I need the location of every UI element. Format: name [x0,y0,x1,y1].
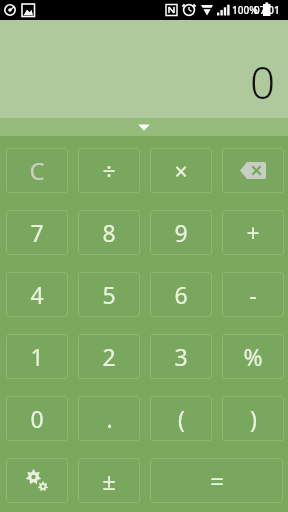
staticText: ( [178,403,185,434]
button[interactable]: ÷ [78,148,140,193]
staticText: 6 [174,279,188,310]
button[interactable]: × [150,148,212,193]
staticText: . [106,403,113,434]
staticText: % [243,341,263,372]
button[interactable]: - [222,272,284,317]
button[interactable]: 6 [150,272,212,317]
staticText: 3 [174,341,188,372]
staticText: 2 [102,341,116,372]
staticText: ) [250,403,257,434]
button[interactable]: ) [222,396,284,441]
staticText: 9 [174,217,188,248]
button[interactable]: = [150,458,283,503]
button[interactable]: 1 [6,334,68,379]
staticText: - [249,279,257,310]
staticText: + [246,217,260,248]
staticText: ÷ [102,155,116,186]
button[interactable]: % [222,334,284,379]
staticText: 4 [30,279,44,310]
button[interactable]: Expand history [0,118,288,136]
staticText: × [174,155,188,186]
button[interactable]: 2 [78,334,140,379]
button[interactable]: 5 [78,272,140,317]
button[interactable]: 9 [150,210,212,255]
staticText: 07:01 [254,3,280,17]
staticText: C [29,154,45,187]
button[interactable]: 4 [6,272,68,317]
staticText: 7 [30,217,44,248]
staticText: 100% [232,3,258,17]
button[interactable]: C [6,148,68,193]
button[interactable]: 3 [150,334,212,379]
button[interactable]: 0 [0,20,288,118]
button[interactable]: + [222,210,284,255]
staticText: ± [102,464,116,497]
staticText: = [210,464,224,497]
button[interactable]: 8 [78,210,140,255]
button[interactable]: 7 [6,210,68,255]
button[interactable]: . [78,396,140,441]
staticText: 1 [30,341,44,372]
staticText: 5 [102,279,116,310]
button[interactable]: 0 [6,396,68,441]
button[interactable]: ± [78,458,140,503]
button[interactable]: ( [150,396,212,441]
staticText: 8 [102,217,116,248]
button[interactable]: Backspace [222,148,284,193]
staticText: 0 [250,52,276,112]
button[interactable]: Settings [6,458,68,503]
staticText: 0 [30,403,44,434]
